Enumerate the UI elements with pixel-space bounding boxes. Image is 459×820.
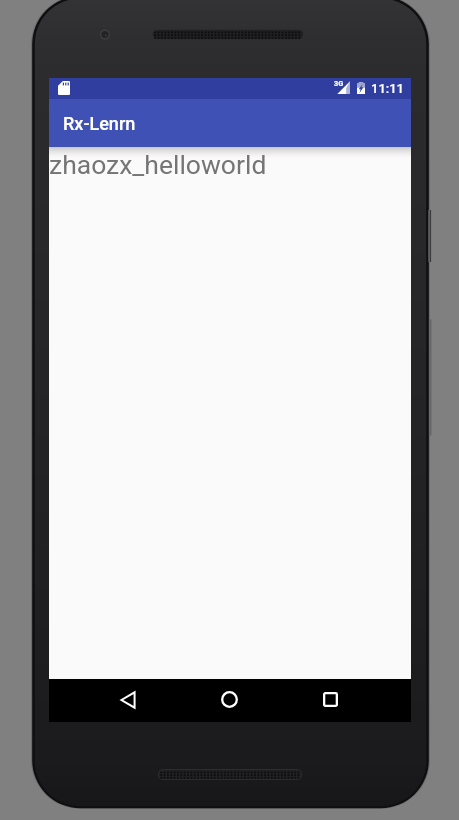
button[interactable]: Rx-Lenrn	[49, 99, 411, 147]
staticText: Rx-Lenrn	[63, 113, 136, 134]
button[interactable]: Recent apps	[314, 679, 347, 720]
staticText: 11:11	[371, 81, 404, 96]
button[interactable]: Back	[111, 679, 144, 720]
staticText: 3G	[334, 79, 344, 88]
staticText: zhaozx_helloworld	[49, 149, 267, 180]
button[interactable]: Home	[213, 679, 246, 720]
